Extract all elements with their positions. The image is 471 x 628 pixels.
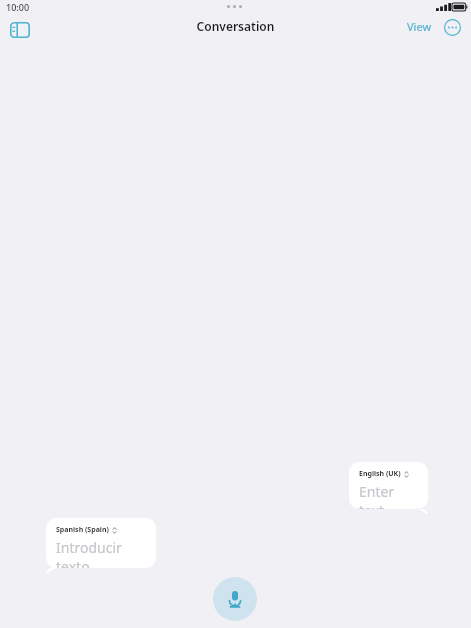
button[interactable]: View: [407, 19, 432, 34]
button[interactable]: Record speech: [213, 577, 257, 621]
staticText: Enter text: [359, 482, 418, 509]
staticText: Spanish (Spain): [56, 525, 109, 535]
staticText: English (UK): [359, 469, 401, 479]
button[interactable]: Toggle sidebar: [6, 18, 34, 42]
staticText: 10:00: [6, 1, 30, 13]
button[interactable]: More options: [441, 16, 463, 38]
button[interactable]: Spanish (Spain): [46, 518, 156, 568]
button[interactable]: English (UK): [349, 462, 428, 509]
staticText: Introducir texto: [56, 538, 146, 568]
staticText: View: [407, 19, 432, 34]
staticText: Conversation: [0, 18, 471, 34]
